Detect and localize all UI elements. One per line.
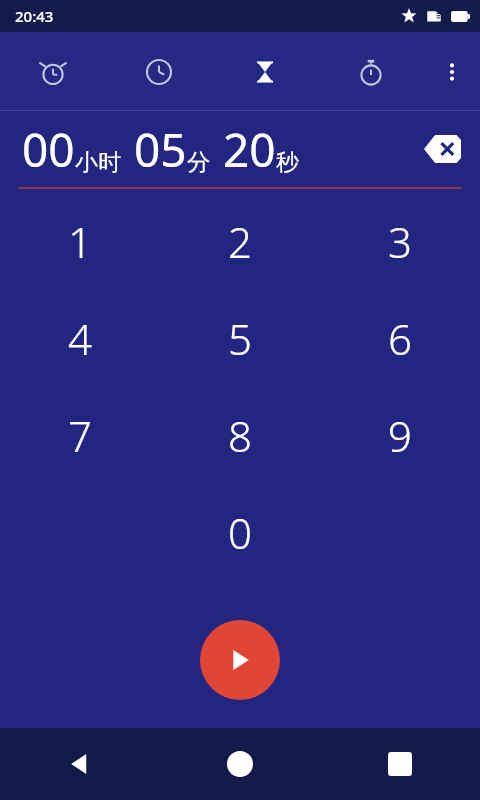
staticText: 1 (68, 213, 92, 270)
button[interactable]: 9 (320, 387, 480, 484)
staticText: 秒 (276, 148, 299, 177)
button[interactable]: Backspace (416, 123, 468, 175)
staticText: 4 (68, 310, 92, 367)
staticText: 00 (22, 118, 75, 181)
staticText: 小时 (75, 148, 121, 177)
button[interactable]: Start timer (200, 620, 280, 700)
button[interactable]: 0 (160, 484, 320, 581)
staticText: 3 (388, 213, 412, 270)
button[interactable]: More options (424, 32, 480, 111)
button[interactable]: Stopwatch (318, 32, 424, 111)
button[interactable]: 3 (320, 193, 480, 290)
button[interactable]: Timer (212, 32, 318, 111)
button[interactable]: 4 (0, 290, 160, 387)
staticText: 6 (388, 310, 412, 367)
staticText: 2 (228, 213, 252, 270)
button[interactable]: 7 (0, 387, 160, 484)
staticText: 7 (68, 407, 92, 464)
button[interactable]: Recent apps (320, 728, 480, 800)
staticText: 8 (228, 407, 252, 464)
staticText: 05 (134, 118, 187, 181)
button[interactable]: Clock (106, 32, 212, 111)
button[interactable]: 1 (0, 193, 160, 290)
button[interactable]: 6 (320, 290, 480, 387)
button[interactable]: 2 (160, 193, 320, 290)
button[interactable]: Home (160, 728, 320, 800)
staticText: 分 (187, 148, 210, 177)
button[interactable]: 5 (160, 290, 320, 387)
button[interactable]: Alarm (0, 32, 106, 111)
button[interactable]: 8 (160, 387, 320, 484)
button[interactable]: Back (0, 728, 160, 800)
staticText: 20:43 (15, 6, 54, 26)
staticText: 5 (228, 310, 252, 367)
staticText: 9 (388, 407, 412, 464)
staticText: 20 (223, 118, 276, 181)
staticText: 0 (228, 504, 252, 561)
